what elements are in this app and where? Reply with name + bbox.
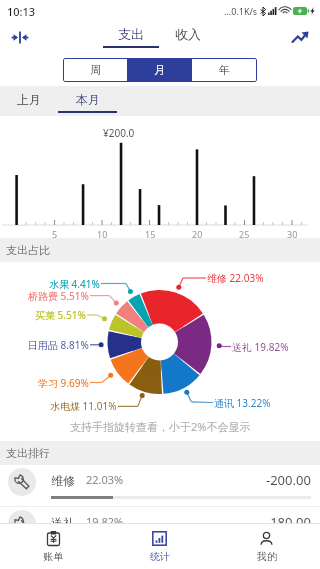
staticText: 支出排行 [6,446,50,460]
button[interactable]: 送礼 [0,507,320,549]
staticText: 周 [90,63,101,77]
button[interactable]: 上月 [0,86,58,116]
staticText: 买菜 5.51% [35,308,86,322]
button[interactable]: 周 [63,58,127,82]
button[interactable]: 维修 [0,465,320,507]
staticText: 10 [97,228,108,240]
staticText: 月 [154,63,165,77]
staticText: 送礼 19.82% [232,340,289,354]
staticText: 维修 22.03% [207,271,264,285]
staticText: -180.00 [266,513,311,531]
staticText: 10:13 [7,4,36,19]
staticText: ¥200.0 [103,126,135,140]
staticText: 19.82% [86,514,124,529]
staticText: 支出占比 [6,243,50,257]
button[interactable]: 我的 [213,524,320,569]
staticText: 水果 4.41% [49,277,100,291]
staticText: 日用品 8.81% [28,338,89,352]
staticText: 我的 [257,550,277,563]
staticText: 5 [52,228,58,240]
staticText: 统计 [150,550,170,563]
staticText: ...0.1K/s [224,5,258,17]
staticText: 桥路费 5.51% [28,289,89,303]
staticText: 收入 [175,26,201,42]
staticText: 上月 [17,92,41,107]
button[interactable]: 统计 [106,524,213,569]
button[interactable]: 支出 [103,22,159,52]
staticText: 送礼 [51,515,75,530]
staticText: 本月 [76,92,100,107]
staticText: 22.03% [86,472,124,487]
staticText: 支出 [118,26,144,42]
staticText: 账单 [43,550,63,563]
staticText: -200.00 [266,471,311,489]
staticText: 支持手指旋转查看，小于2%不会显示 [70,419,251,434]
button[interactable]: 收起 [6,23,34,51]
staticText: 水电煤 11.01% [50,399,117,413]
staticText: 通讯 13.22% [214,396,271,410]
button[interactable]: 年 [192,58,257,82]
staticText: 30 [287,228,298,240]
staticText: 学习 9.69% [38,376,89,390]
staticText: 年 [219,63,230,77]
button[interactable]: 趋势 [286,23,314,51]
button[interactable]: 收入 [160,22,216,52]
button[interactable]: 账单 [0,524,106,569]
staticText: 25 [239,228,250,240]
button[interactable]: 本月 [58,86,117,116]
button[interactable]: 月 [127,58,192,82]
staticText: 20 [192,228,203,240]
staticText: 15 [145,228,156,240]
staticText: 维修 [51,473,75,488]
